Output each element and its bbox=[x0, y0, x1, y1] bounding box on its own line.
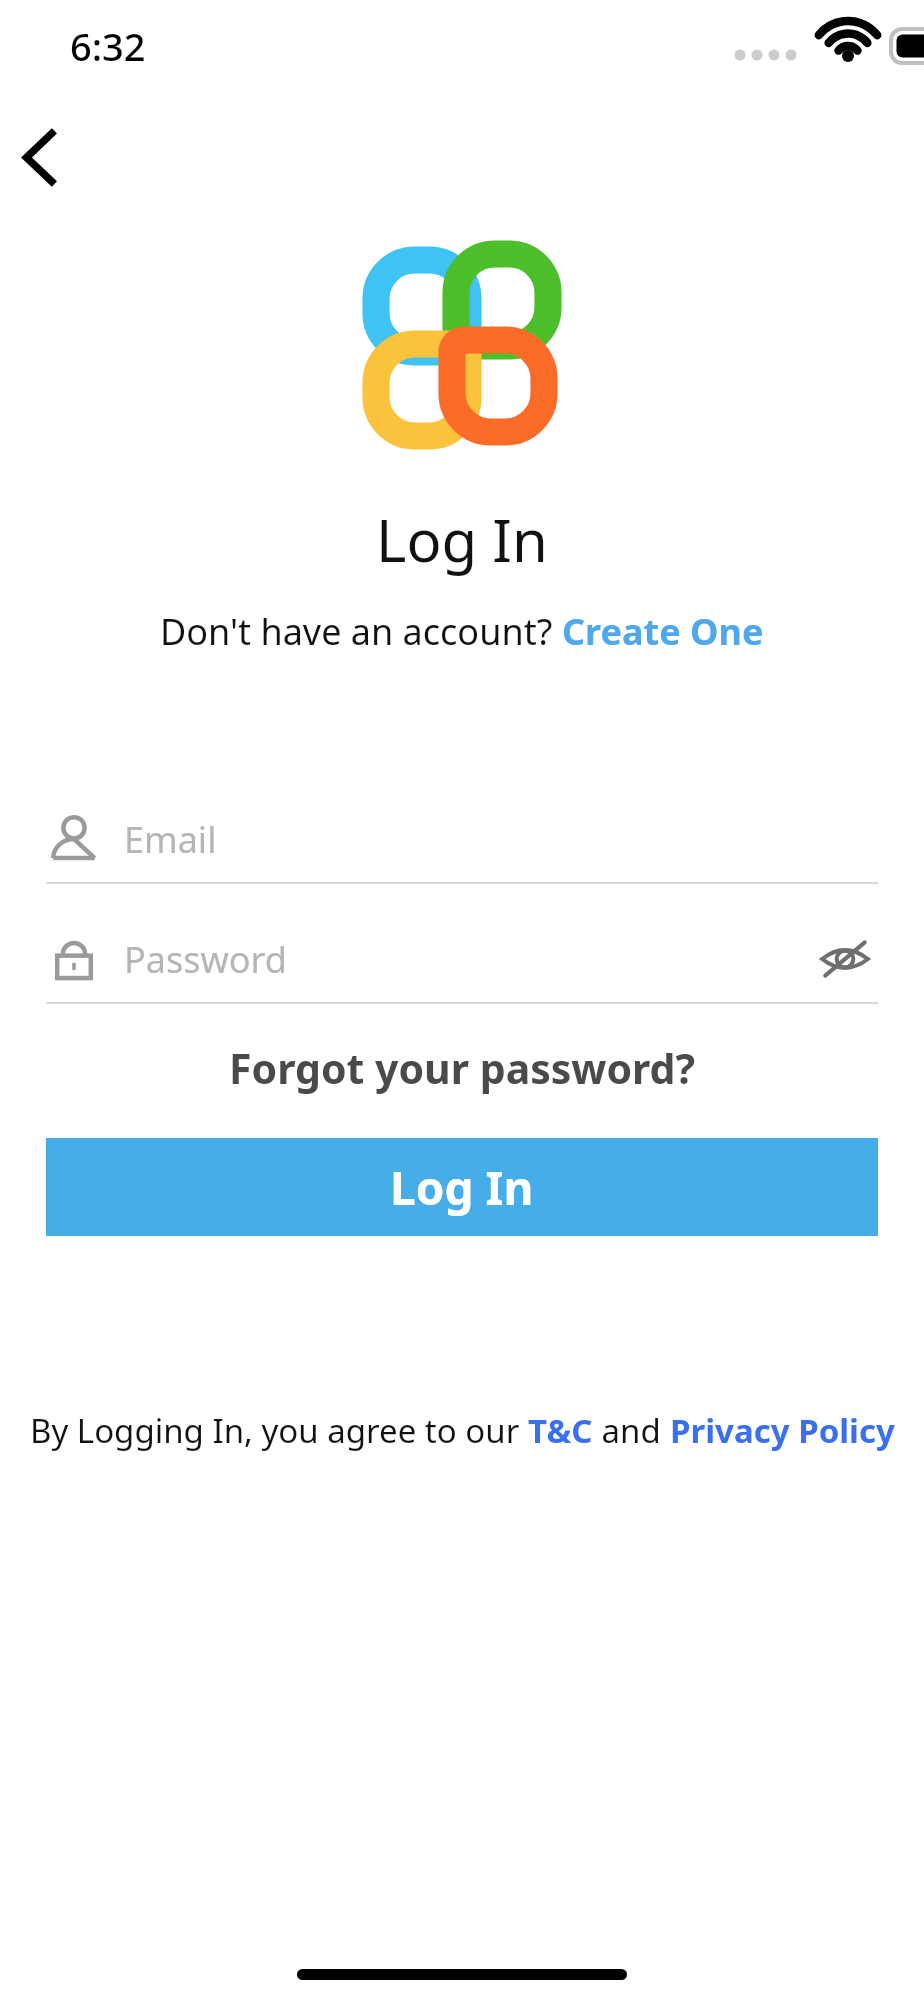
button[interactable]: Password bbox=[46, 916, 878, 1002]
button[interactable]: Forgot your password? bbox=[229, 1040, 696, 1096]
staticText: Privacy Policy bbox=[670, 1408, 895, 1453]
staticText: Log In bbox=[390, 1156, 534, 1219]
staticText: Don't have an account? bbox=[160, 607, 562, 656]
button[interactable]: Privacy Policy bbox=[670, 1408, 895, 1453]
button[interactable]: Back bbox=[4, 112, 94, 202]
button[interactable]: Show password bbox=[812, 926, 878, 992]
staticText: Log In bbox=[376, 500, 548, 579]
staticText: By Logging In, you agree to our bbox=[30, 1408, 528, 1453]
staticText: Password bbox=[124, 935, 287, 984]
button[interactable]: Create One bbox=[562, 607, 764, 656]
button[interactable]: T&C bbox=[528, 1408, 593, 1453]
staticText: 6:32 bbox=[70, 20, 146, 72]
staticText: and bbox=[593, 1408, 670, 1453]
button[interactable]: Email bbox=[46, 796, 878, 882]
staticText: Create One bbox=[562, 607, 764, 656]
button[interactable]: Log In bbox=[46, 1138, 878, 1236]
staticText: Forgot your password? bbox=[229, 1040, 696, 1096]
staticText: Email bbox=[124, 815, 217, 864]
staticText: T&C bbox=[528, 1408, 593, 1453]
